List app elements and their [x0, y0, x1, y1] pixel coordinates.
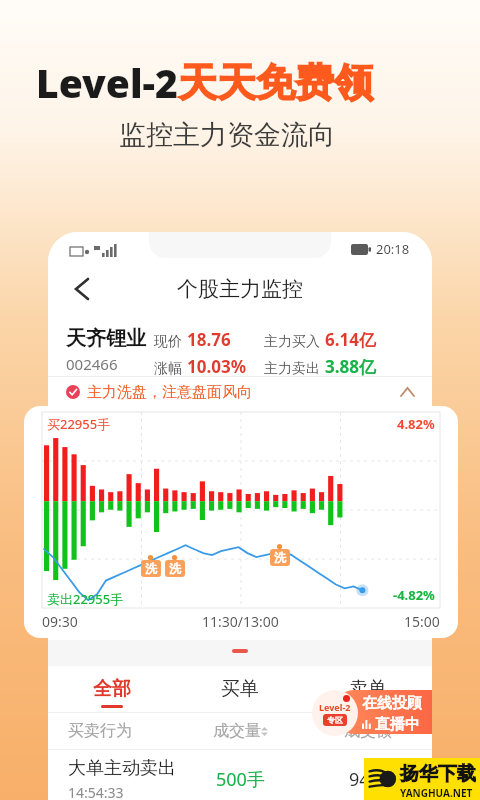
- staticText: 主力卖出: [264, 360, 320, 378]
- staticText: 10.03%: [187, 355, 247, 378]
- staticText: 主力洗盘，注意盘面风向: [87, 383, 252, 402]
- staticText: 监控主力资金流向: [119, 118, 335, 152]
- staticText: 在线投顾: [362, 694, 422, 713]
- staticText: 全部: [93, 677, 131, 701]
- staticText: 现价: [154, 333, 182, 351]
- staticText: 大单主动卖出: [68, 757, 176, 780]
- staticText: Level-2: [36, 56, 178, 109]
- staticText: 11:30/13:00: [202, 612, 279, 631]
- staticText: 94万: [349, 767, 388, 792]
- button[interactable]: 买单: [176, 672, 304, 712]
- staticText: 09:30: [42, 612, 78, 631]
- staticText: 002466: [66, 354, 118, 374]
- button[interactable]: 大单主动卖出: [48, 750, 432, 800]
- staticText: YANGHUA.NET: [400, 786, 473, 800]
- staticText: 涨幅: [154, 360, 182, 378]
- staticText: 成交额: [344, 721, 392, 741]
- staticText: 天齐锂业: [66, 326, 146, 351]
- staticText: 14:54:33: [68, 783, 124, 800]
- button[interactable]: 返回: [62, 269, 102, 309]
- staticText: 洗: [145, 561, 157, 576]
- staticText: 卖单: [349, 677, 387, 701]
- staticText: 卖出22955手: [47, 590, 124, 608]
- staticText: 6.14亿: [325, 328, 376, 351]
- staticText: 18.76: [187, 328, 231, 351]
- staticText: 3.88亿: [325, 355, 376, 378]
- staticText: 成交量: [213, 721, 261, 741]
- staticText: Level-2: [319, 701, 351, 713]
- button[interactable]: 卖单: [304, 672, 432, 712]
- button[interactable]: 在线投顾: [332, 690, 432, 734]
- staticText: 洗: [274, 550, 286, 565]
- button[interactable]: Level-2 专区: [312, 690, 358, 736]
- staticText: 买单: [221, 677, 259, 701]
- staticText: 扬华下载: [400, 762, 476, 786]
- staticText: 买22955手: [47, 415, 111, 433]
- staticText: 直播中: [375, 715, 420, 734]
- staticText: 主力买入: [264, 333, 320, 351]
- staticText: 洗: [169, 561, 181, 576]
- staticText: 20:18: [376, 240, 410, 258]
- button[interactable]: 主力洗盘，注意盘面风向: [48, 377, 432, 407]
- staticText: 个股主力监控: [177, 276, 303, 302]
- staticText: -4.82%: [393, 586, 435, 604]
- staticText: 4.82%: [397, 415, 435, 433]
- staticText: 专区: [327, 715, 343, 725]
- staticText: 天天免费领: [178, 58, 373, 107]
- button[interactable]: 全部: [48, 672, 176, 712]
- staticText: 买卖行为: [68, 721, 132, 741]
- staticText: 500手: [216, 767, 265, 792]
- staticText: 15:00: [404, 612, 440, 631]
